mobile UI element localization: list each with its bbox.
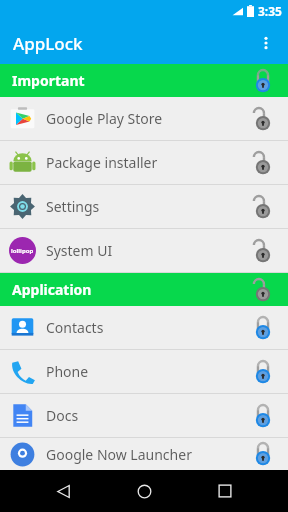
button[interactable]: Package installer — [0, 141, 288, 184]
staticText: Contacts — [46, 318, 244, 337]
button[interactable]: Lock System UI — [244, 232, 282, 270]
staticText: lollipop — [11, 247, 34, 255]
staticText: Google Now Launcher — [46, 445, 244, 464]
button[interactable]: Recent apps — [207, 473, 243, 509]
button[interactable]: Unlock all Application — [244, 273, 282, 306]
staticText: Package installer — [46, 153, 244, 172]
button[interactable]: Lock Google Play Store — [244, 100, 282, 138]
staticText: Application — [12, 280, 92, 299]
staticText: 3:35 — [258, 3, 282, 19]
button[interactable]: Home — [126, 473, 162, 509]
staticText: System UI — [46, 241, 244, 260]
button[interactable]: Lock Package installer — [244, 144, 282, 182]
staticText: Phone — [46, 362, 244, 381]
button[interactable]: More options — [248, 25, 284, 61]
staticText: Important — [12, 71, 85, 90]
staticText: Google Play Store — [46, 109, 244, 128]
button[interactable]: Contacts — [0, 306, 288, 349]
staticText: Settings — [46, 197, 244, 216]
button[interactable]: lollipop — [0, 229, 288, 272]
button[interactable]: Phone — [0, 350, 288, 393]
button[interactable]: Docs — [0, 394, 288, 437]
button[interactable]: Unlock Contacts — [244, 309, 282, 347]
button[interactable]: Google Now Launcher — [0, 438, 288, 470]
staticText: Docs — [46, 406, 244, 425]
button[interactable]: Unlock Docs — [244, 397, 282, 435]
button[interactable]: Unlock Google Now Launcher — [244, 438, 282, 470]
button[interactable]: Back — [45, 473, 81, 509]
button[interactable]: Settings — [0, 185, 288, 228]
button[interactable]: Google Play Store — [0, 97, 288, 140]
button[interactable]: Unlock Phone — [244, 353, 282, 391]
button[interactable]: Important — [0, 64, 288, 97]
button[interactable]: Application — [0, 273, 288, 306]
button[interactable]: Lock all Important — [244, 64, 282, 97]
staticText: AppLock — [13, 32, 83, 55]
button[interactable]: Lock Settings — [244, 188, 282, 226]
